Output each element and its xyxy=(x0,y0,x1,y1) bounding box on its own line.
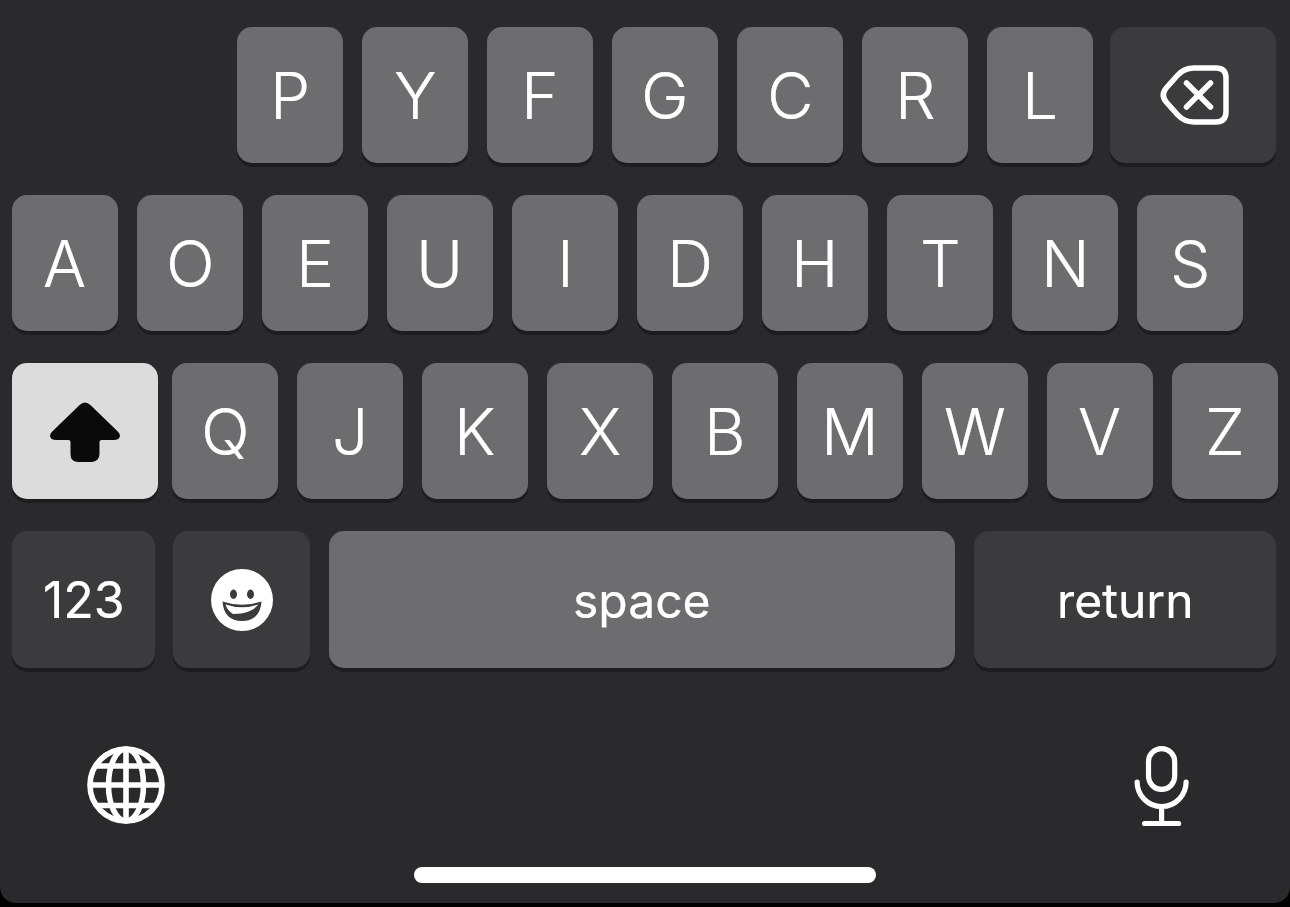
staticText: O xyxy=(166,225,215,302)
staticText: return xyxy=(1057,571,1194,629)
button[interactable]: Y xyxy=(362,27,468,163)
button[interactable]: G xyxy=(612,27,718,163)
staticText: A xyxy=(43,225,87,302)
button[interactable]: O xyxy=(137,195,243,331)
button[interactable] xyxy=(12,363,158,499)
button[interactable]: W xyxy=(922,363,1028,499)
staticText: R xyxy=(895,57,936,134)
staticText: P xyxy=(270,57,311,134)
button[interactable]: U xyxy=(387,195,493,331)
staticText: J xyxy=(332,393,369,470)
staticText: U xyxy=(416,225,464,302)
staticText: X xyxy=(579,393,622,470)
staticText: S xyxy=(1170,225,1211,302)
button[interactable] xyxy=(1110,27,1276,163)
button[interactable]: space xyxy=(329,531,955,668)
staticText: W xyxy=(944,393,1006,470)
button[interactable]: R xyxy=(862,27,968,163)
staticText: space xyxy=(573,571,711,629)
staticText: Y xyxy=(394,57,437,134)
button[interactable] xyxy=(173,531,310,668)
button[interactable]: P xyxy=(237,27,343,163)
staticText: E xyxy=(296,225,335,302)
staticText: D xyxy=(667,225,714,302)
staticText: K xyxy=(454,393,496,470)
button[interactable]: J xyxy=(297,363,403,499)
button[interactable]: V xyxy=(1047,363,1153,499)
button[interactable]: A xyxy=(12,195,118,331)
staticText: M xyxy=(821,393,879,470)
staticText: N xyxy=(1041,225,1090,302)
button[interactable]: X xyxy=(547,363,653,499)
staticText: C xyxy=(767,57,814,134)
staticText: Z xyxy=(1205,393,1245,470)
button[interactable]: 123 xyxy=(12,531,155,668)
staticText: F xyxy=(521,57,559,134)
staticText: B xyxy=(704,393,746,470)
button[interactable]: C xyxy=(737,27,843,163)
button[interactable]: I xyxy=(512,195,618,331)
staticText: G xyxy=(641,57,689,134)
button[interactable]: H xyxy=(762,195,868,331)
staticText: Q xyxy=(201,393,250,470)
button[interactable]: D xyxy=(637,195,743,331)
button[interactable]: K xyxy=(422,363,528,499)
staticText: H xyxy=(791,225,839,302)
button[interactable]: M xyxy=(797,363,903,499)
staticText: I xyxy=(557,225,574,302)
staticText: 123 xyxy=(43,570,125,630)
button[interactable]: S xyxy=(1137,195,1243,331)
button[interactable] xyxy=(1128,742,1196,830)
button[interactable]: T xyxy=(887,195,993,331)
button[interactable]: F xyxy=(487,27,593,163)
button[interactable]: return xyxy=(974,531,1276,668)
staticText: L xyxy=(1022,57,1059,134)
button[interactable]: N xyxy=(1012,195,1118,331)
button[interactable]: E xyxy=(262,195,368,331)
button[interactable] xyxy=(87,746,165,824)
button[interactable]: L xyxy=(987,27,1093,163)
button[interactable]: B xyxy=(672,363,778,499)
button[interactable]: Q xyxy=(172,363,278,499)
staticText: V xyxy=(1078,393,1122,470)
staticText: T xyxy=(920,225,961,302)
button[interactable]: Z xyxy=(1172,363,1278,499)
